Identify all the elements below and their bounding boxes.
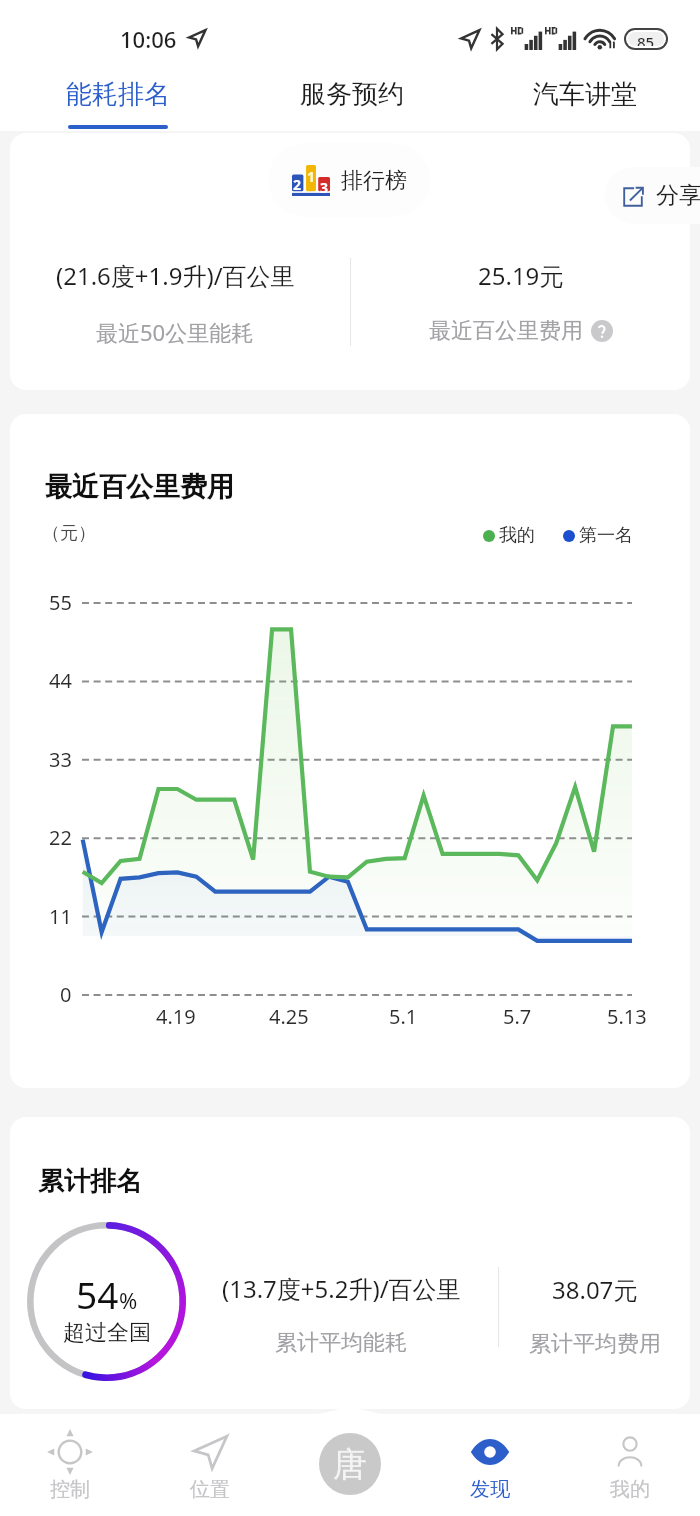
staticText: 我的	[499, 524, 535, 547]
button[interactable]: 分享	[605, 167, 700, 224]
button[interactable]: 控制	[20, 1430, 120, 1502]
button[interactable]: 汽车讲堂	[533, 78, 637, 111]
staticText: 排行榜	[341, 167, 407, 195]
staticText: 0	[60, 981, 72, 1008]
staticText: %	[119, 1285, 138, 1315]
staticText: 累计平均能耗	[275, 1329, 407, 1357]
button[interactable]: 位置	[160, 1430, 260, 1502]
staticText: （元）	[42, 522, 96, 545]
button[interactable]: 能耗排名	[66, 78, 170, 129]
staticText: 33	[49, 746, 72, 773]
staticText: 唐	[333, 1443, 367, 1486]
staticText: 超过全国	[63, 1319, 151, 1347]
button[interactable]: 服务预约	[300, 78, 404, 111]
staticText: 5.13	[607, 1003, 647, 1030]
button[interactable]: 2	[268, 143, 430, 217]
staticText: 10:06	[120, 24, 177, 54]
button[interactable]: 发现	[440, 1430, 540, 1502]
staticText: 1	[307, 167, 316, 186]
staticText: 11	[49, 903, 72, 930]
staticText: 55	[49, 589, 72, 616]
staticText: 累计平均费用	[529, 1330, 661, 1358]
button[interactable]: 我的	[580, 1430, 680, 1502]
staticText: 我的	[610, 1477, 650, 1502]
staticText: 5.1	[389, 1003, 418, 1030]
staticText: 累计排名	[38, 1165, 142, 1198]
staticText: 第一名	[579, 524, 633, 547]
staticText: 最近百公里费用	[45, 470, 234, 504]
staticText: (13.7度+5.2升)/百公里	[222, 1272, 461, 1305]
staticText: (21.6度+1.9升)/百公里	[56, 259, 295, 292]
staticText: 最近百公里费用	[429, 317, 583, 345]
button[interactable]: Vehicle	[319, 1433, 381, 1495]
staticText: 位置	[190, 1477, 230, 1502]
staticText: 汽车讲堂	[533, 78, 637, 111]
staticText: 54	[76, 1269, 119, 1319]
staticText: 4.25	[269, 1003, 309, 1030]
staticText: 2	[293, 175, 302, 194]
staticText: 服务预约	[300, 78, 404, 111]
staticText: 发现	[470, 1477, 510, 1502]
staticText: 最近50公里能耗	[96, 317, 254, 347]
staticText: 25.19元	[478, 259, 564, 292]
staticText: 控制	[50, 1477, 90, 1502]
staticText: 3	[320, 178, 329, 197]
staticText: 能耗排名	[66, 78, 170, 111]
staticText: 38.07元	[552, 1273, 638, 1306]
staticText: 4.19	[156, 1003, 196, 1030]
staticText: 44	[49, 667, 72, 694]
staticText: 分享	[656, 181, 700, 210]
staticText: 22	[49, 824, 72, 851]
staticText: 5.7	[503, 1003, 532, 1030]
staticText: 85	[637, 32, 655, 46]
